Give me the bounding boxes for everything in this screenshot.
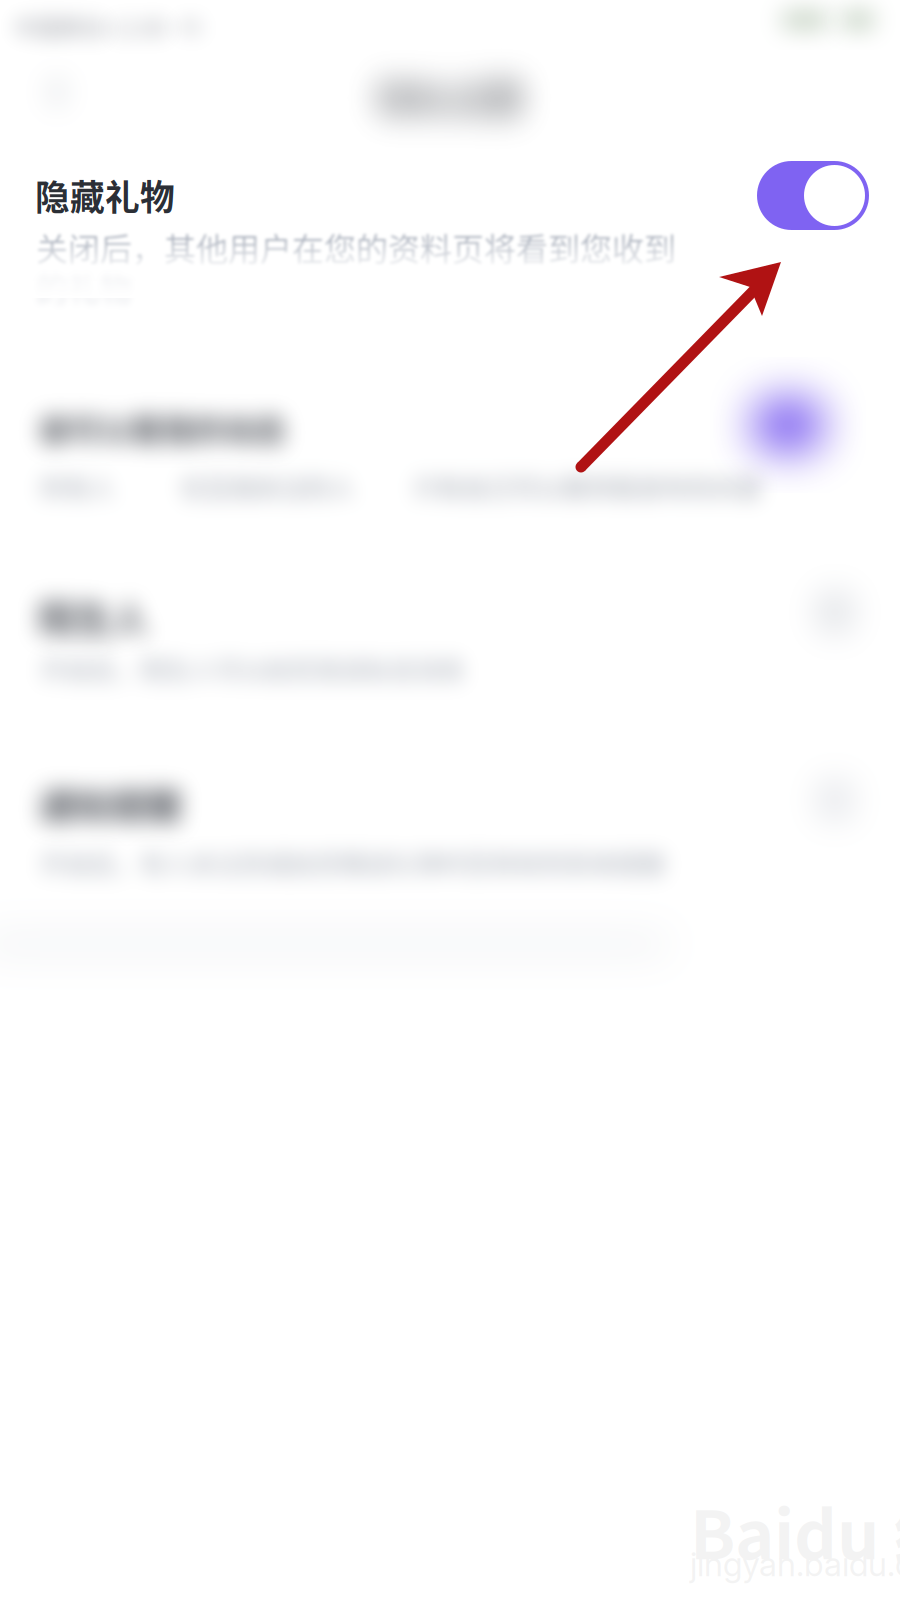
staticText: jingyan.baidu.com <box>690 1544 900 1584</box>
button[interactable]: 隐藏礼物 <box>0 0 900 1600</box>
staticText: Baidu 经验 <box>690 1482 900 1578</box>
staticText: 隐藏礼物 <box>35 170 175 220</box>
